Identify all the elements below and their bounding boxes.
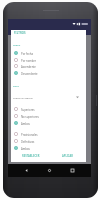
- staticText: Filtro: [13, 84, 19, 87]
- button[interactable]: Recents: [68, 166, 77, 175]
- button[interactable]: Definitivas: [14, 138, 69, 144]
- staticText: Por fecha: [21, 52, 33, 56]
- button[interactable]: Por nombre: [14, 57, 69, 63]
- button[interactable]: No superiores: [14, 113, 69, 119]
- button[interactable]: Home: [45, 166, 54, 175]
- button[interactable]: APLICAR: [61, 153, 74, 159]
- staticText: Por nombre: [21, 59, 37, 63]
- staticText: Orden: [13, 43, 21, 46]
- staticText: Todas las ofertas: [13, 96, 33, 99]
- staticText: FILTROS: [14, 31, 26, 35]
- staticText: Descendente: [21, 72, 38, 76]
- button[interactable]: Back: [22, 166, 31, 175]
- button[interactable]: Ambas: [14, 145, 69, 151]
- staticText: Ambos: [21, 122, 30, 126]
- staticText: APLICAR: [62, 154, 73, 158]
- staticText: Superiores: [21, 108, 35, 112]
- staticText: Definitivas: [21, 140, 35, 144]
- staticText: No superiores: [21, 115, 39, 119]
- button[interactable]: Todas las ofertas: [13, 94, 79, 100]
- staticText: Provisionales: [21, 133, 38, 137]
- staticText: Ambas: [21, 147, 30, 151]
- button[interactable]: Superiores: [14, 106, 69, 112]
- staticText: Ascendente: [21, 65, 36, 69]
- staticText: RESTABLECER: [22, 154, 40, 158]
- button[interactable]: Ascendente: [14, 63, 69, 69]
- button[interactable]: RESTABLECER: [21, 153, 41, 159]
- button[interactable]: Descendente: [14, 70, 69, 76]
- button[interactable]: Provisionales: [14, 131, 69, 137]
- button[interactable]: Por fecha: [14, 50, 69, 56]
- button[interactable]: Ambos: [14, 120, 69, 126]
